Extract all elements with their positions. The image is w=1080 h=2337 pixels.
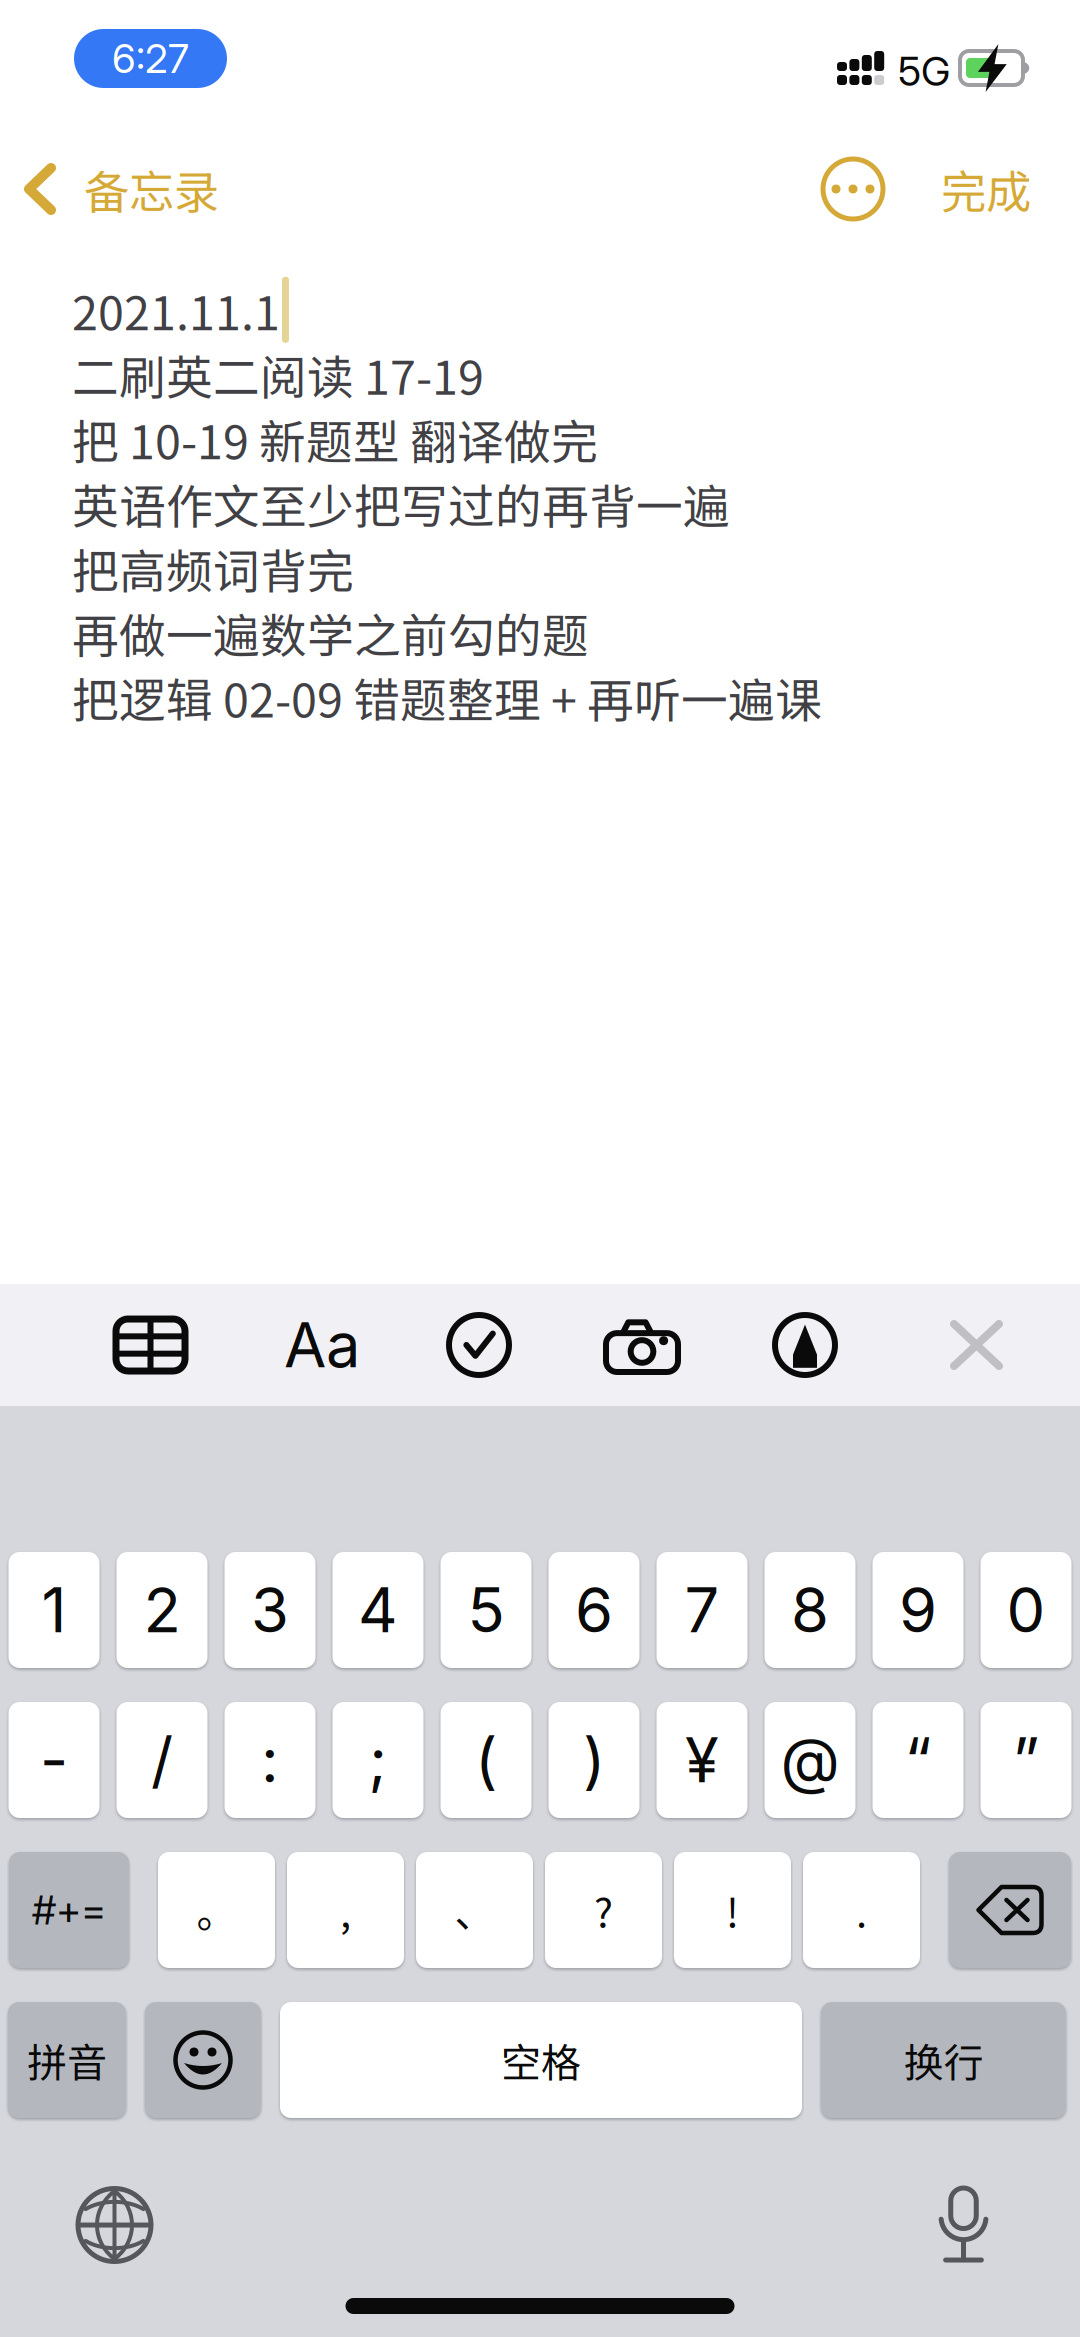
- button[interactable]: -: [8, 1702, 99, 1818]
- button[interactable]: ;: [332, 1702, 423, 1818]
- button[interactable]: 9: [872, 1552, 963, 1668]
- button[interactable]: 清单: [427, 1284, 531, 1406]
- staticText: 把 10-19 新题型 翻译做完: [72, 405, 598, 473]
- staticText: 6: [575, 1573, 613, 1647]
- staticText: 再做一遍数学之前勾的题: [72, 599, 589, 666]
- staticText: -: [40, 1723, 68, 1797]
- button[interactable]: :: [224, 1702, 315, 1818]
- staticText: ,: [340, 1881, 351, 1939]
- button[interactable]: 5: [440, 1552, 531, 1668]
- button[interactable]: 8: [764, 1552, 855, 1668]
- staticText: 。: [196, 1881, 236, 1939]
- staticText: 英语作文至少把写过的再背一遍: [72, 470, 730, 537]
- staticText: 拼音: [27, 2031, 107, 2089]
- button[interactable]: 4: [332, 1552, 423, 1668]
- staticText: 5G: [898, 47, 950, 95]
- staticText: ?: [594, 1881, 613, 1939]
- button[interactable]: 更多: [807, 145, 899, 233]
- button[interactable]: 拼音: [8, 2002, 126, 2118]
- button[interactable]: ¥: [656, 1702, 747, 1818]
- button[interactable]: 切换键盘: [78, 2174, 151, 2276]
- staticText: 空格: [501, 2031, 581, 2089]
- staticText: /: [151, 1723, 173, 1797]
- button[interactable]: (: [440, 1702, 531, 1818]
- staticText: 3: [251, 1573, 289, 1647]
- staticText: ;: [368, 1723, 387, 1797]
- button[interactable]: #+=: [9, 1852, 129, 1968]
- staticText: Aa: [284, 1308, 360, 1382]
- staticText: 9: [899, 1573, 937, 1647]
- button[interactable]: 完成: [899, 142, 1080, 236]
- staticText: !: [726, 1881, 739, 1939]
- button[interactable]: 1: [8, 1552, 99, 1668]
- staticText: .: [856, 1881, 867, 1939]
- button[interactable]: ?: [545, 1852, 662, 1968]
- button[interactable]: 表情: [145, 2002, 261, 2118]
- button[interactable]: 3: [224, 1552, 315, 1668]
- button[interactable]: 备忘录: [0, 142, 219, 236]
- button[interactable]: 相机: [584, 1284, 700, 1406]
- staticText: 把高频词背完: [72, 534, 354, 602]
- button[interactable]: 语音输入: [938, 2174, 989, 2276]
- staticText: 5: [467, 1573, 504, 1647]
- button[interactable]: 换行: [821, 2002, 1066, 2118]
- staticText: 2: [143, 1573, 180, 1647]
- button[interactable]: 删除: [949, 1852, 1071, 1968]
- button[interactable]: /: [116, 1702, 207, 1818]
- staticText: 7: [684, 1573, 719, 1647]
- button[interactable]: 2: [116, 1552, 207, 1668]
- button[interactable]: ,: [287, 1852, 404, 1968]
- staticText: 8: [791, 1573, 829, 1647]
- button[interactable]: .: [803, 1852, 920, 1968]
- staticText: 完成: [941, 156, 1031, 222]
- button[interactable]: 空格: [280, 2002, 802, 2118]
- staticText: (: [475, 1723, 497, 1797]
- staticText: 0: [1006, 1573, 1045, 1647]
- staticText: 1: [41, 1573, 66, 1647]
- staticText: “: [904, 1723, 931, 1797]
- button[interactable]: !: [674, 1852, 791, 1968]
- button[interactable]: 关闭: [929, 1284, 1024, 1406]
- button[interactable]: 7: [656, 1552, 747, 1668]
- button[interactable]: 表格: [94, 1284, 207, 1406]
- staticText: 换行: [903, 2031, 983, 2089]
- staticText: 6:27: [112, 34, 189, 83]
- staticText: #+=: [32, 1886, 106, 1934]
- button[interactable]: ): [548, 1702, 639, 1818]
- button[interactable]: 0: [980, 1552, 1071, 1668]
- staticText: 2021.11.1: [72, 276, 280, 344]
- staticText: ): [583, 1723, 605, 1797]
- button[interactable]: Aa: [264, 1284, 380, 1406]
- button[interactable]: @: [764, 1702, 855, 1818]
- button[interactable]: 标记: [753, 1284, 857, 1406]
- staticText: 二刷英二阅读 17-19: [72, 341, 484, 408]
- staticText: 4: [358, 1573, 398, 1647]
- button[interactable]: “: [872, 1702, 963, 1818]
- button[interactable]: 。: [158, 1852, 275, 1968]
- staticText: ”: [1012, 1723, 1039, 1797]
- staticText: ¥: [685, 1723, 719, 1797]
- button[interactable]: ”: [980, 1702, 1071, 1818]
- staticText: :: [261, 1723, 279, 1797]
- staticText: 把逻辑 02-09 错题整理 + 再听一遍课: [72, 663, 822, 731]
- staticText: 、: [454, 1881, 494, 1939]
- button[interactable]: 、: [416, 1852, 533, 1968]
- staticText: 备忘录: [84, 156, 219, 222]
- button[interactable]: 6: [548, 1552, 639, 1668]
- staticText: @: [780, 1723, 839, 1797]
